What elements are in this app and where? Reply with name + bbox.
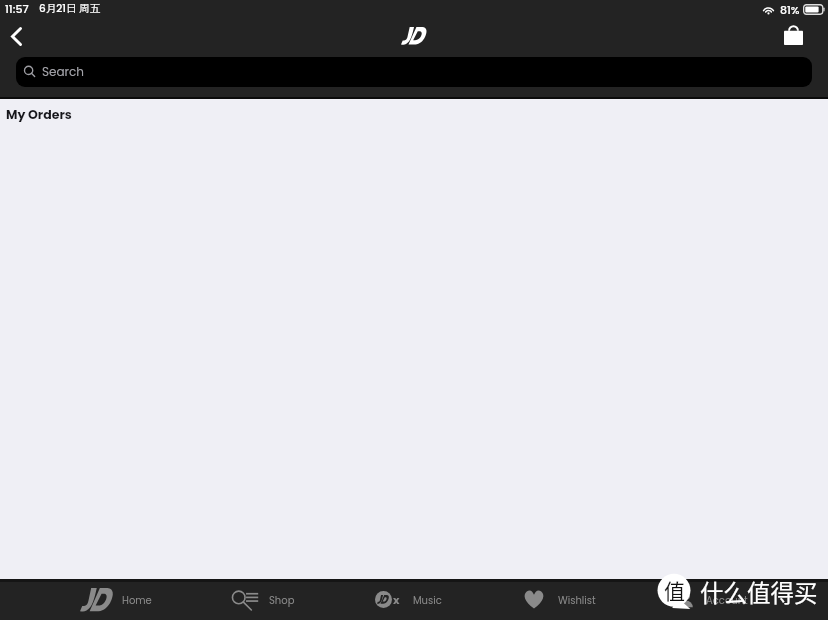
- button[interactable]: Account: [676, 579, 748, 620]
- button[interactable]: Shop: [232, 579, 295, 620]
- button[interactable]: Home: [80, 579, 152, 620]
- staticText: 值: [664, 575, 685, 605]
- button[interactable]: Wishlist: [523, 579, 596, 620]
- button[interactable]: Search: [16, 57, 812, 87]
- button[interactable]: x: [375, 579, 442, 620]
- staticText: x: [393, 592, 400, 607]
- staticText: Search: [42, 63, 85, 80]
- staticText: Music: [413, 593, 442, 607]
- button[interactable]: Shopping bag: [775, 16, 811, 54]
- staticText: Wishlist: [558, 593, 596, 607]
- staticText: Account: [706, 593, 748, 607]
- staticText: Shop: [269, 593, 295, 607]
- staticText: 81%: [780, 2, 800, 17]
- staticText: 什么值得买: [700, 575, 818, 609]
- staticText: 11:57: [5, 1, 29, 16]
- button[interactable]: Back: [0, 17, 32, 55]
- staticText: Home: [122, 593, 152, 607]
- staticText: My Orders: [6, 106, 72, 123]
- staticText: 6月21日 周五: [39, 1, 101, 16]
